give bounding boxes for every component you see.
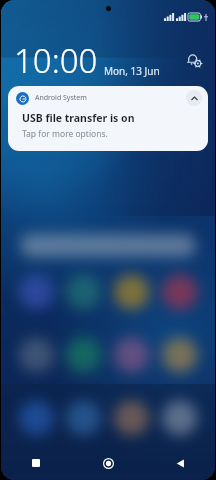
staticText: Tap for more options. [22, 128, 108, 140]
button[interactable]: Notification settings [182, 48, 206, 72]
staticText: Mon, 13 Jun [104, 64, 160, 78]
button[interactable]: Recent apps [0, 446, 72, 480]
staticText: 10:00 [14, 38, 98, 83]
button[interactable]: Android System [8, 86, 208, 151]
staticText: USB file transfer is on [22, 111, 135, 125]
button[interactable]: Home [72, 446, 144, 480]
staticText: Android System [35, 93, 87, 103]
button[interactable]: Back [144, 446, 216, 480]
button[interactable]: Collapse notification [186, 90, 202, 106]
